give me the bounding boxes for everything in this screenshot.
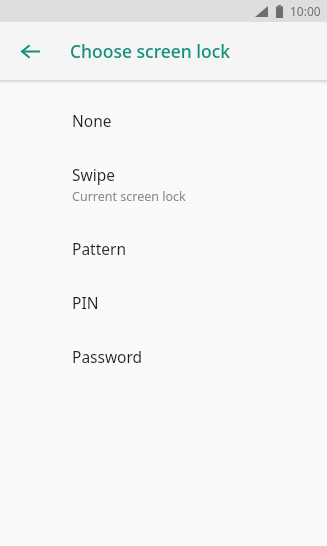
button[interactable]: Swipe bbox=[0, 131, 327, 205]
staticText: None bbox=[72, 110, 112, 131]
button[interactable]: PIN bbox=[0, 259, 327, 313]
button[interactable]: Pattern bbox=[0, 205, 327, 259]
button[interactable]: None bbox=[0, 110, 327, 131]
staticText: PIN bbox=[72, 292, 99, 313]
button[interactable]: Password bbox=[0, 313, 327, 367]
staticText: Password bbox=[72, 346, 143, 367]
button[interactable]: Back bbox=[12, 33, 48, 69]
staticText: 10:00 bbox=[290, 3, 321, 19]
staticText: Pattern bbox=[72, 238, 126, 259]
staticText: Current screen lock bbox=[72, 188, 186, 205]
staticText: Swipe bbox=[72, 164, 115, 185]
staticText: Choose screen lock bbox=[70, 39, 231, 63]
